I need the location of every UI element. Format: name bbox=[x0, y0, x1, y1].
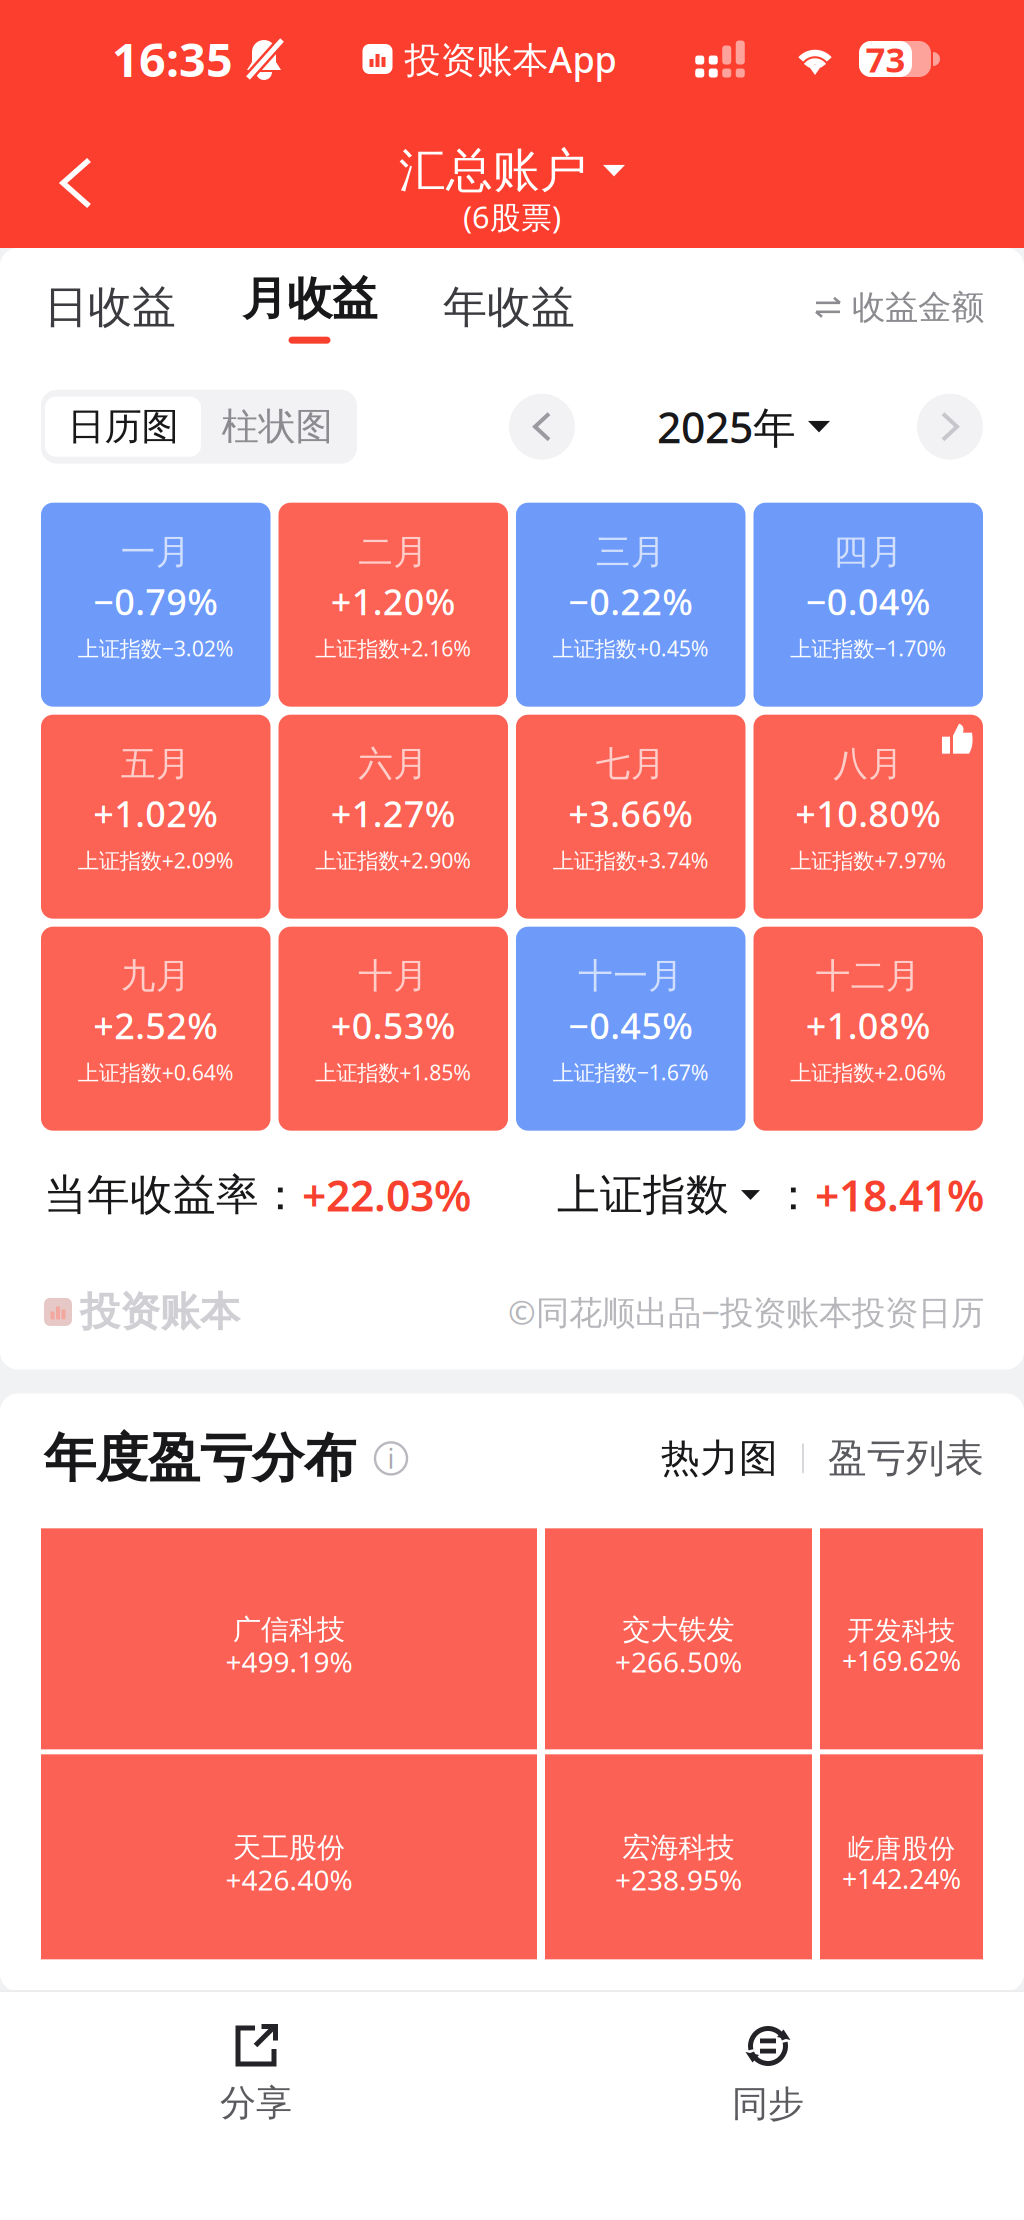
staticText: −0.45% bbox=[568, 1001, 693, 1049]
button[interactable]: 三月 bbox=[516, 503, 745, 707]
staticText: 汇总账户 bbox=[399, 142, 587, 199]
button[interactable]: 开发科技 bbox=[820, 1528, 983, 1749]
staticText: 当年收益率： bbox=[44, 1169, 302, 1221]
staticText: 上证指数 bbox=[557, 1169, 729, 1221]
staticText: 五月 bbox=[121, 743, 191, 785]
staticText: 八月 bbox=[833, 743, 903, 785]
staticText: 上证指数+0.45% bbox=[553, 634, 709, 662]
button[interactable]: 月收益 bbox=[242, 271, 377, 344]
button[interactable]: 热力图 bbox=[661, 1435, 778, 1482]
staticText: ©同花顺出品−投资账本投资日历 bbox=[508, 1290, 984, 1334]
button[interactable]: 宏海科技 bbox=[545, 1754, 812, 1959]
button[interactable]: 广信科技 bbox=[41, 1528, 537, 1749]
button[interactable]: 日历图 bbox=[45, 397, 201, 457]
staticText: 上证指数−1.70% bbox=[790, 634, 946, 662]
button[interactable]: 2025年 bbox=[657, 398, 830, 455]
staticText: 分享 bbox=[220, 2081, 292, 2125]
button[interactable]: 天工股份 bbox=[41, 1754, 537, 1959]
button[interactable]: 分享 bbox=[0, 2025, 512, 2125]
staticText: +3.66% bbox=[568, 789, 693, 837]
staticText: 日收益 bbox=[44, 280, 176, 334]
staticText: 上证指数+1.85% bbox=[315, 1058, 471, 1086]
staticText: 盈亏列表 bbox=[828, 1435, 984, 1482]
button[interactable]: 十一月 bbox=[516, 927, 745, 1131]
staticText: +169.62% bbox=[842, 1643, 961, 1678]
staticText: +426.40% bbox=[225, 1861, 352, 1898]
staticText: 七月 bbox=[596, 743, 666, 785]
button[interactable]: 收益金额 bbox=[815, 287, 984, 328]
staticText: 六月 bbox=[358, 743, 428, 785]
staticText: 上证指数+3.74% bbox=[553, 846, 709, 874]
button[interactable]: 柱状图 bbox=[201, 397, 353, 457]
staticText: 日历图 bbox=[67, 404, 178, 450]
staticText: 投资账本App bbox=[404, 35, 616, 83]
staticText: +10.80% bbox=[795, 789, 941, 837]
button[interactable]: 上证指数 bbox=[557, 1169, 815, 1221]
button[interactable]: 汇总账户 bbox=[399, 142, 625, 199]
staticText: 年度盈亏分布 bbox=[44, 1426, 356, 1490]
button[interactable]: 日收益 bbox=[44, 280, 176, 334]
staticText: 交大铁发 bbox=[622, 1613, 734, 1647]
staticText: 宏海科技 bbox=[622, 1831, 734, 1865]
staticText: +1.08% bbox=[806, 1001, 931, 1049]
staticText: 十月 bbox=[358, 955, 428, 997]
staticText: i bbox=[387, 1441, 394, 1476]
button[interactable]: 十月 bbox=[278, 927, 508, 1131]
button[interactable]: 一月 bbox=[41, 503, 270, 707]
staticText: 十二月 bbox=[816, 955, 921, 997]
staticText: 上证指数+2.16% bbox=[315, 634, 471, 662]
staticText: +22.03% bbox=[302, 1167, 471, 1223]
staticText: 上证指数−1.67% bbox=[553, 1058, 709, 1086]
button[interactable]: 八月 bbox=[753, 715, 983, 919]
staticText: +1.20% bbox=[331, 577, 456, 625]
staticText: +2.52% bbox=[93, 1001, 218, 1049]
staticText: 三月 bbox=[596, 531, 666, 573]
button[interactable]: 四月 bbox=[753, 503, 983, 707]
staticText: 广信科技 bbox=[233, 1613, 345, 1647]
staticText: 十一月 bbox=[578, 955, 683, 997]
staticText: 同步 bbox=[732, 2082, 804, 2126]
staticText: 开发科技 bbox=[847, 1614, 955, 1647]
staticText: +238.95% bbox=[615, 1861, 742, 1898]
staticText: +499.19% bbox=[225, 1643, 352, 1680]
staticText: 天工股份 bbox=[233, 1831, 345, 1865]
staticText: 16:35 bbox=[112, 28, 233, 90]
staticText: (6股票) bbox=[463, 196, 561, 237]
button[interactable]: 上一年 bbox=[509, 394, 575, 460]
button[interactable]: 下一年 bbox=[917, 394, 983, 460]
staticText: 2025年 bbox=[657, 398, 796, 455]
staticText: 上证指数+2.06% bbox=[790, 1058, 946, 1086]
staticText: 屹唐股份 bbox=[847, 1832, 955, 1865]
button[interactable]: 交大铁发 bbox=[545, 1528, 812, 1749]
button[interactable]: 屹唐股份 bbox=[820, 1754, 983, 1959]
staticText: −0.22% bbox=[568, 577, 693, 625]
staticText: 月收益 bbox=[242, 271, 377, 327]
staticText: +142.24% bbox=[842, 1861, 961, 1896]
staticText: +0.53% bbox=[331, 1001, 456, 1049]
button[interactable]: 九月 bbox=[41, 927, 270, 1131]
staticText: 上证指数+7.97% bbox=[790, 846, 946, 874]
staticText: +266.50% bbox=[615, 1643, 742, 1680]
button[interactable]: 同步 bbox=[512, 2024, 1024, 2126]
staticText: 四月 bbox=[833, 531, 903, 573]
staticText: 收益金额 bbox=[852, 287, 984, 328]
staticText: 上证指数−3.02% bbox=[78, 634, 234, 662]
staticText: 上证指数+2.90% bbox=[315, 846, 471, 874]
staticText: ： bbox=[772, 1169, 815, 1221]
staticText: −0.79% bbox=[93, 577, 218, 625]
staticText: −0.04% bbox=[806, 577, 931, 625]
staticText: 热力图 bbox=[661, 1435, 778, 1482]
button[interactable]: 返回 bbox=[34, 138, 118, 228]
staticText: 73 bbox=[865, 36, 905, 82]
staticText: 九月 bbox=[121, 955, 191, 997]
button[interactable]: 七月 bbox=[516, 715, 745, 919]
staticText: +18.41% bbox=[815, 1167, 984, 1223]
button[interactable]: 盈亏列表 bbox=[828, 1435, 984, 1482]
button[interactable]: 六月 bbox=[278, 715, 508, 919]
button[interactable]: 年收益 bbox=[443, 280, 575, 334]
button[interactable]: 五月 bbox=[41, 715, 270, 919]
staticText: 投资账本 bbox=[80, 1287, 240, 1336]
button[interactable]: 二月 bbox=[278, 503, 508, 707]
button[interactable]: 十二月 bbox=[753, 927, 983, 1131]
staticText: 二月 bbox=[358, 531, 428, 573]
